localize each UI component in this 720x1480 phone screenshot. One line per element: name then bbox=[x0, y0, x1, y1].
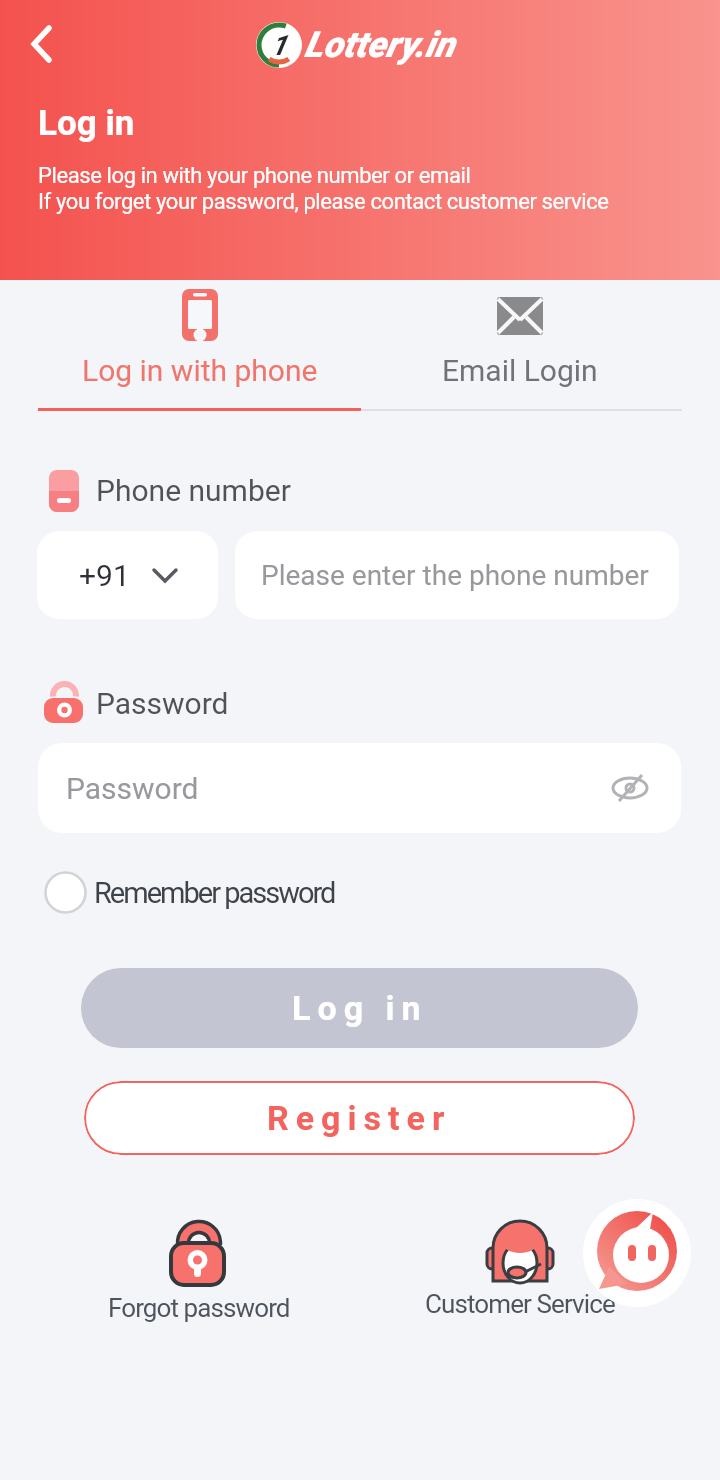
staticText: Register bbox=[267, 1098, 452, 1138]
button[interactable]: Log in bbox=[81, 968, 638, 1048]
button[interactable]: Forgot password bbox=[69, 1215, 329, 1323]
button[interactable]: Password bbox=[38, 743, 681, 833]
staticText: Password bbox=[96, 686, 229, 721]
staticText: Forgot password bbox=[108, 1293, 290, 1323]
staticText: Email Login bbox=[442, 353, 598, 388]
button[interactable]: Register bbox=[84, 1081, 635, 1155]
staticText: 1 bbox=[271, 29, 287, 62]
staticText: Log in bbox=[38, 103, 135, 144]
staticText: Remember password bbox=[94, 876, 335, 910]
staticText: Log in with phone bbox=[82, 353, 318, 388]
button[interactable]: Please enter the phone number bbox=[235, 531, 679, 619]
button[interactable]: Log in with phone bbox=[20, 284, 380, 388]
button[interactable]: Remember password bbox=[44, 871, 335, 914]
staticText: Please enter the phone number bbox=[261, 559, 649, 592]
staticText: Password bbox=[66, 771, 199, 806]
button[interactable] bbox=[16, 18, 68, 70]
staticText: Phone number bbox=[96, 473, 291, 508]
staticText: +91 bbox=[79, 558, 130, 593]
button[interactable]: Customer Service bbox=[390, 1215, 650, 1319]
staticText: Customer Service bbox=[425, 1289, 615, 1319]
button[interactable] bbox=[583, 1199, 691, 1307]
staticText: Log in bbox=[292, 988, 428, 1028]
staticText: Lottery.in bbox=[304, 24, 455, 66]
button[interactable]: Email Login bbox=[380, 284, 660, 388]
staticText: Please log in with your phone number or … bbox=[38, 163, 609, 214]
button[interactable]: +91 bbox=[37, 531, 218, 619]
